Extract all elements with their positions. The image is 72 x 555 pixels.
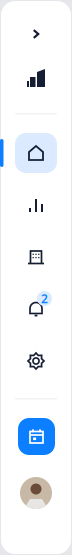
- button[interactable]: Calendar: [18, 418, 55, 455]
- button[interactable]: Expand sidebar: [19, 17, 53, 51]
- staticText: 2: [41, 290, 48, 306]
- button[interactable]: Account: [20, 477, 52, 509]
